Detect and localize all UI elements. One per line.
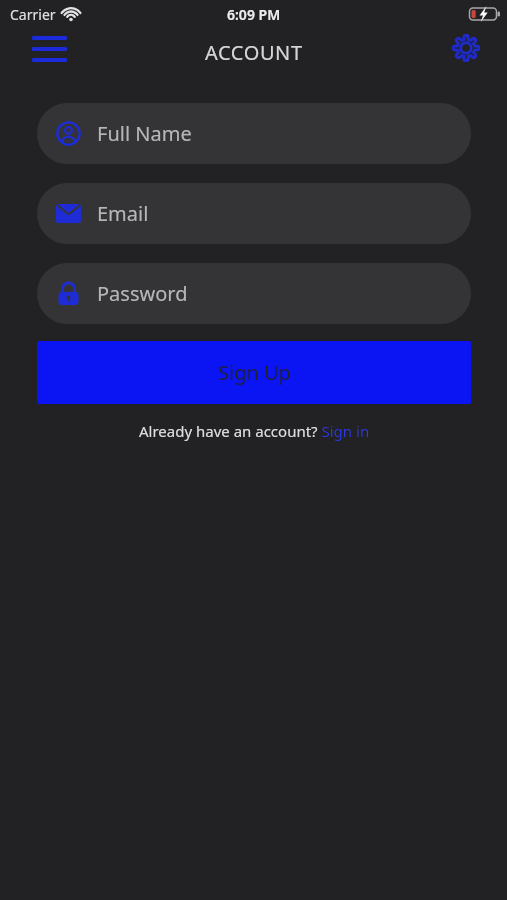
button[interactable]: Already have an account? Sign in (37, 421, 471, 441)
button[interactable]: Full Name (37, 103, 471, 164)
button[interactable]: Email (37, 183, 471, 244)
button[interactable] (30, 35, 69, 65)
button[interactable]: Sign Up (37, 341, 471, 404)
staticText: Full Name (97, 120, 192, 147)
staticText: Password (97, 280, 188, 307)
button[interactable]: Password (37, 263, 471, 324)
staticText: Already have an account? Sign in (139, 421, 370, 441)
staticText: ACCOUNT (205, 39, 303, 66)
staticText: Carrier (10, 5, 56, 24)
staticText: 6:09 PM (227, 5, 281, 24)
staticText: Email (97, 200, 149, 227)
staticText: Sign Up (218, 359, 291, 386)
button[interactable] (449, 31, 483, 65)
